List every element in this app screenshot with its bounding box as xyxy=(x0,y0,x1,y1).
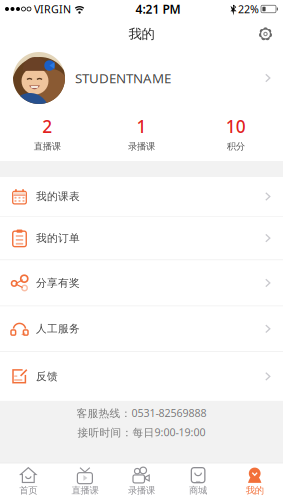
staticText: 商城 xyxy=(189,485,207,496)
staticText: 我的订单 xyxy=(36,231,80,245)
button[interactable]: Settings xyxy=(258,18,283,50)
button[interactable]: 我的 xyxy=(226,463,283,499)
staticText: VIRGIN xyxy=(34,2,71,16)
staticText: 人工服务 xyxy=(36,322,80,335)
staticText: 直播课 xyxy=(34,141,61,152)
staticText: 1 xyxy=(136,115,146,138)
staticText: 客服热线：0531-82569888 xyxy=(76,406,206,420)
staticText: 录播课 xyxy=(128,141,155,152)
staticText: 我的 xyxy=(246,485,264,496)
button[interactable]: 商城 xyxy=(170,463,226,499)
button[interactable]: 反馈 xyxy=(0,352,283,401)
staticText: 首页 xyxy=(19,485,37,496)
staticText: 分享有奖 xyxy=(36,276,80,289)
staticText: 22% xyxy=(238,2,259,16)
staticText: 直播课 xyxy=(71,485,98,496)
staticText: 反馈 xyxy=(36,370,58,383)
staticText: 积分 xyxy=(227,141,245,152)
staticText: 2 xyxy=(42,115,52,138)
button[interactable]: STUDENTNAME xyxy=(0,50,283,106)
button[interactable]: 分享有奖 xyxy=(0,260,283,306)
staticText: 4:21 PM xyxy=(135,1,180,17)
button[interactable]: 录播课 xyxy=(113,463,170,499)
button[interactable]: 我的订单 xyxy=(0,217,283,260)
staticText: STUDENTNAME xyxy=(75,69,171,87)
button[interactable]: 直播课 xyxy=(57,463,113,499)
staticText: 我的课表 xyxy=(36,190,80,203)
staticText: 接听时间：每日9:00-19:00 xyxy=(77,425,205,439)
staticText: 10 xyxy=(226,115,246,138)
staticText: 我的 xyxy=(128,26,154,42)
staticText: 录播课 xyxy=(128,485,155,496)
button[interactable]: 人工服务 xyxy=(0,306,283,351)
button[interactable]: 首页 xyxy=(0,463,57,499)
button[interactable]: 我的课表 xyxy=(0,177,283,216)
